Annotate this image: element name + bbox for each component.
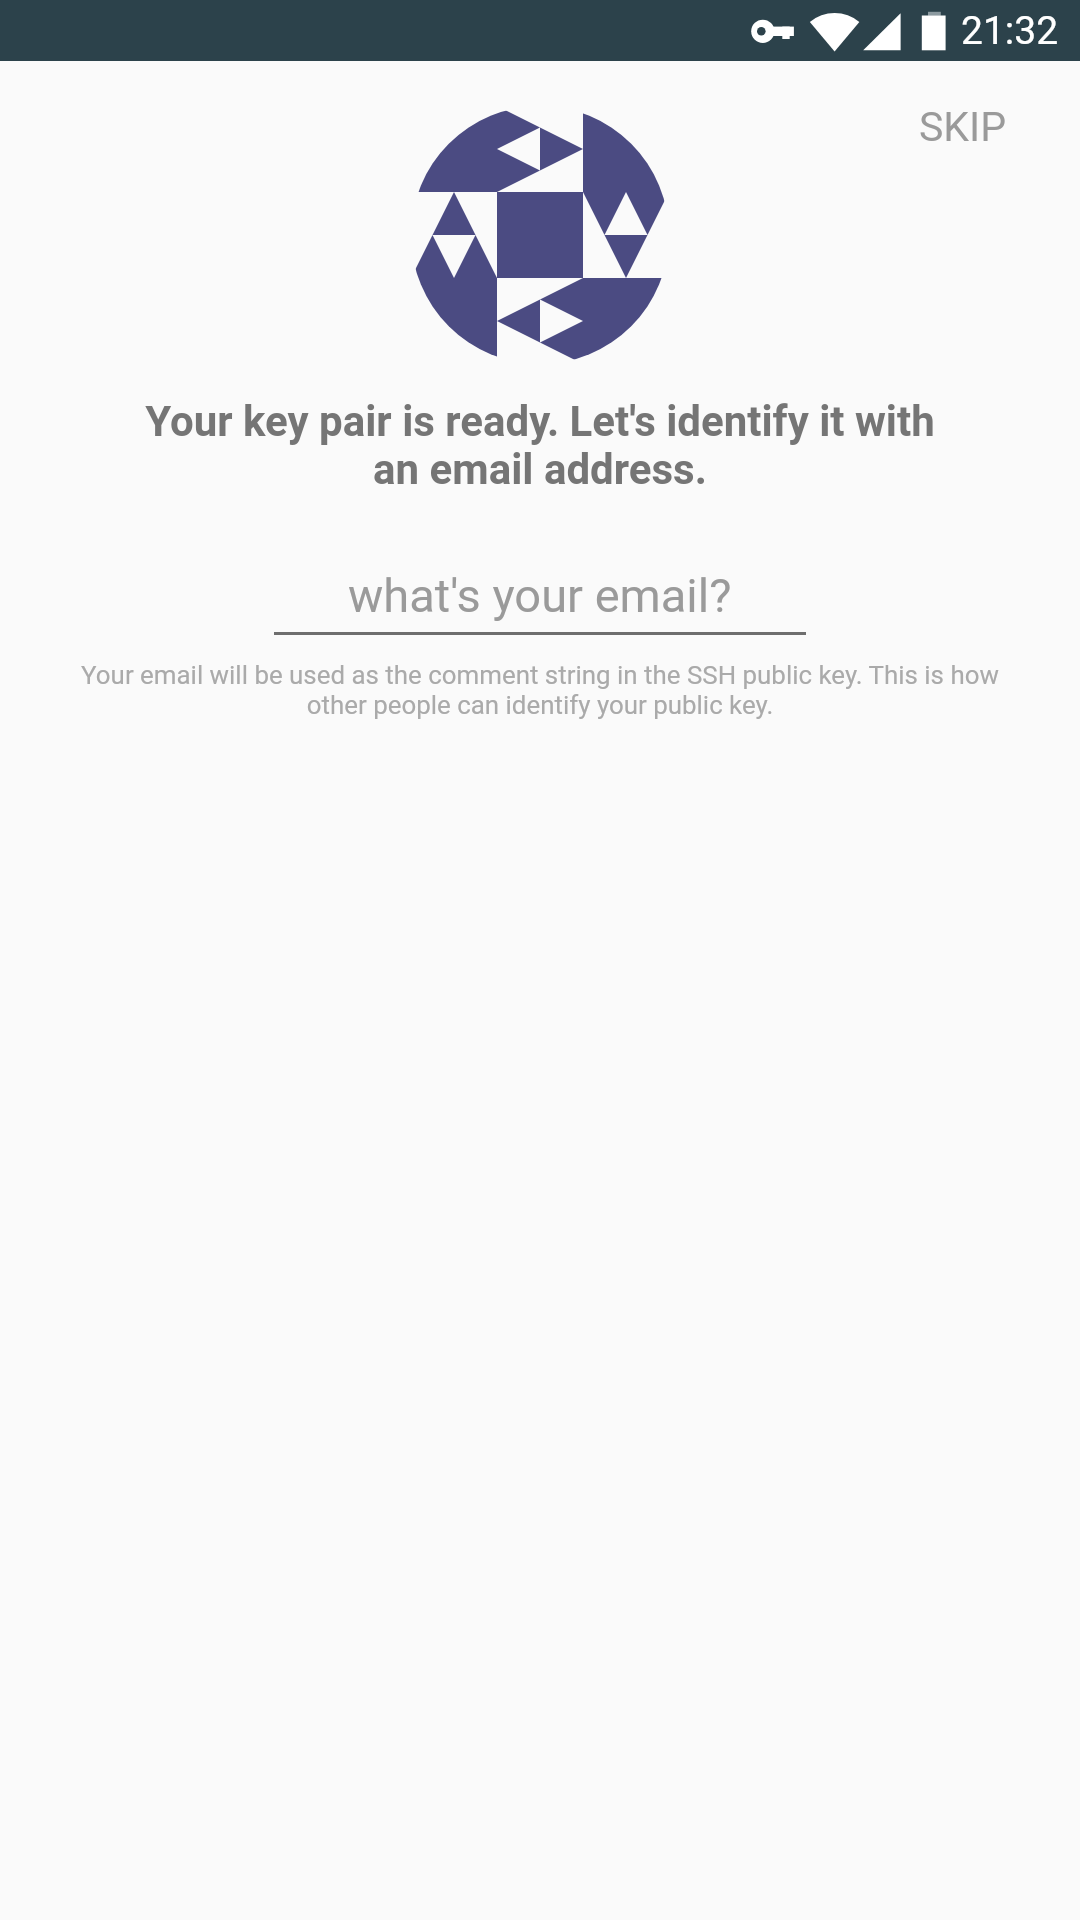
other: Status icons [0,0,1080,61]
button[interactable]: Email address input field [274,568,806,635]
staticText: what's your email? [348,568,732,623]
staticText: Your email will be used as the comment s… [60,660,1020,720]
staticText: Your key pair is ready. Let's identify i… [140,397,940,494]
staticText: SKIP [919,103,1007,151]
staticText: 21:32 [961,8,1059,54]
button[interactable]: SKIP [886,85,1040,169]
